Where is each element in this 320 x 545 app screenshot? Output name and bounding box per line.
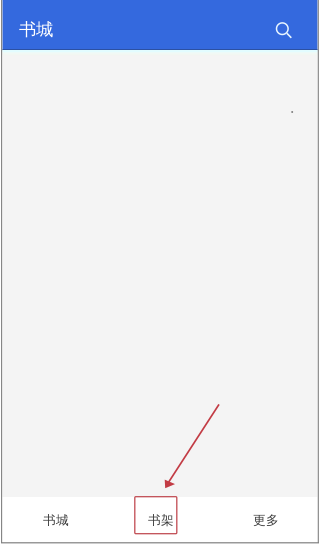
button[interactable]: 更多 xyxy=(213,498,318,543)
staticText: 更多 xyxy=(253,512,279,528)
staticText: 书架 xyxy=(148,512,174,528)
button[interactable]: 书架 xyxy=(108,498,213,543)
staticText: 书城 xyxy=(19,19,53,40)
button[interactable]: 书城 xyxy=(3,498,108,543)
staticText: 书城 xyxy=(43,512,69,528)
button[interactable]: Search xyxy=(267,13,301,47)
